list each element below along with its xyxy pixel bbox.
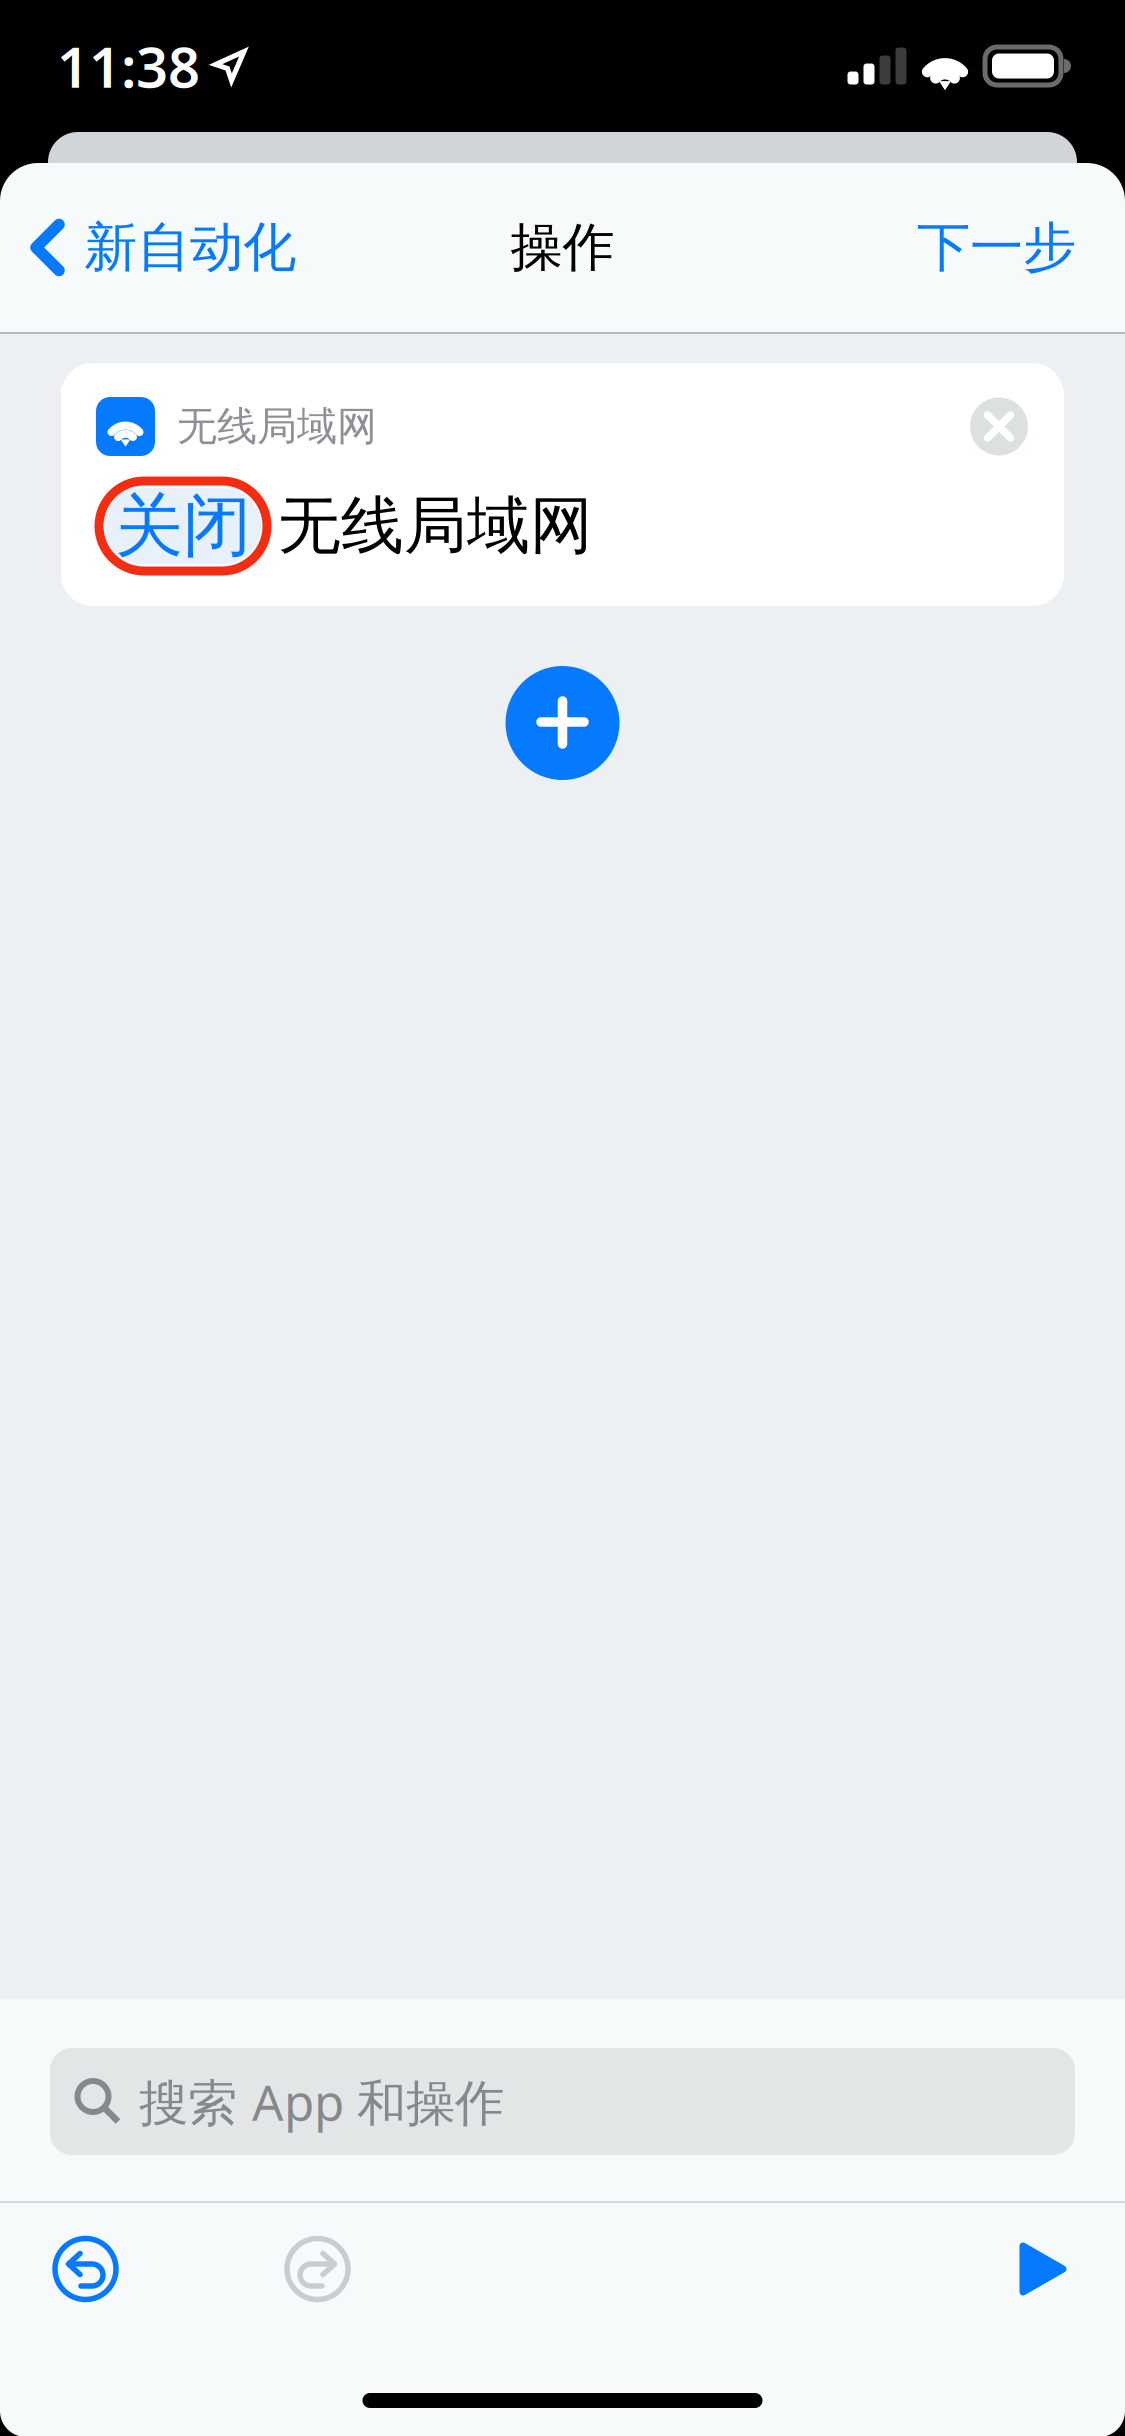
button[interactable]: 重做: [279, 2230, 356, 2307]
staticText: 关闭: [115, 484, 251, 568]
staticText: 操作: [510, 216, 614, 279]
button[interactable]: 添加操作: [505, 666, 619, 780]
button[interactable]: 新自动化: [8, 195, 318, 300]
button[interactable]: 移除操作: [970, 397, 1028, 455]
staticText: 无线局域网: [177, 402, 377, 451]
staticText: 搜索 App 和操作: [139, 2069, 504, 2134]
button[interactable]: 搜索 App 和操作: [50, 2048, 1075, 2155]
button[interactable]: 下一步: [895, 195, 1098, 300]
button[interactable]: 关闭: [105, 488, 261, 564]
staticText: 下一步: [917, 215, 1076, 280]
staticText: 11:38: [57, 29, 200, 103]
staticText: 新自动化: [84, 215, 296, 280]
button[interactable]: 运行: [1018, 2241, 1068, 2297]
staticText: 无线局域网: [278, 487, 593, 564]
button[interactable]: 撤销: [47, 2230, 124, 2307]
